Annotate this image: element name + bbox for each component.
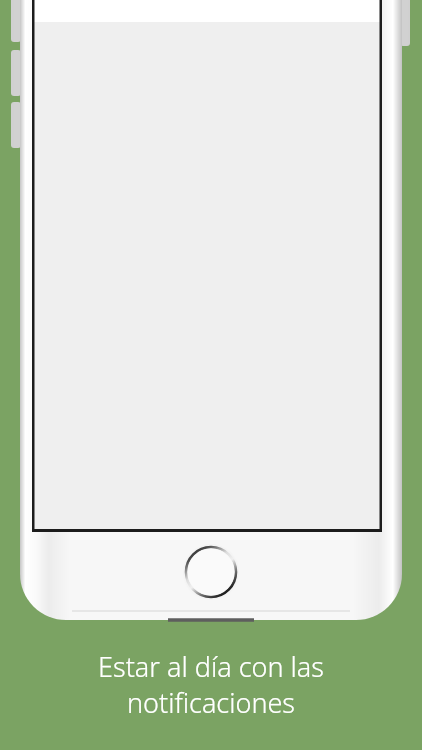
staticText: Estar al día con las notificaciones (98, 648, 324, 721)
